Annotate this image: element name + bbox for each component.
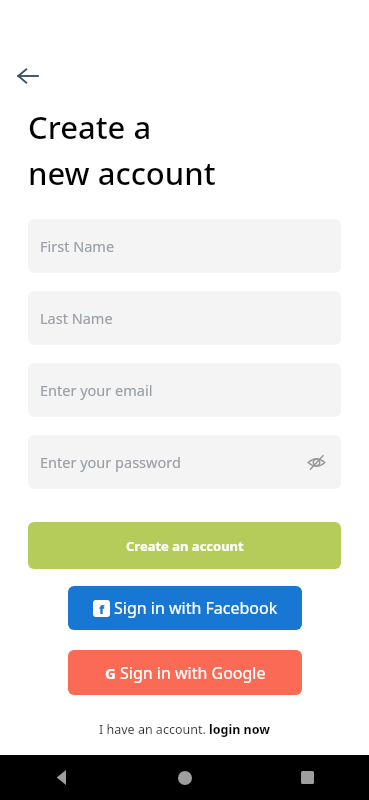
button[interactable]: Back [0,755,123,800]
staticText: G [105,663,116,683]
button[interactable]: Home [123,755,246,800]
staticText: I have an account. login now [99,721,270,738]
button[interactable]: Enter your email [28,363,341,417]
button[interactable]: f [68,586,302,630]
button[interactable]: I have an account. login now [99,721,270,738]
staticText: Last Name [40,308,113,328]
button[interactable]: Back [10,58,46,94]
button[interactable]: Last Name [28,291,341,345]
button[interactable]: Recent apps [246,755,369,800]
button[interactable]: Create an account [28,522,341,569]
staticText: Sign in with Facebook [114,597,278,619]
staticText: Create a [28,106,152,148]
staticText: new account [28,152,216,194]
staticText: Create an account [126,537,244,555]
button[interactable]: G [68,650,302,695]
button[interactable]: Toggle password visibility [305,451,327,473]
button[interactable]: First Name [28,219,341,273]
staticText: Enter your password [40,452,181,472]
staticText: Sign in with Google [120,662,266,684]
staticText: First Name [40,236,115,256]
staticText: f [99,600,105,617]
button[interactable]: Enter your password [28,435,341,489]
staticText: Enter your email [40,380,153,400]
